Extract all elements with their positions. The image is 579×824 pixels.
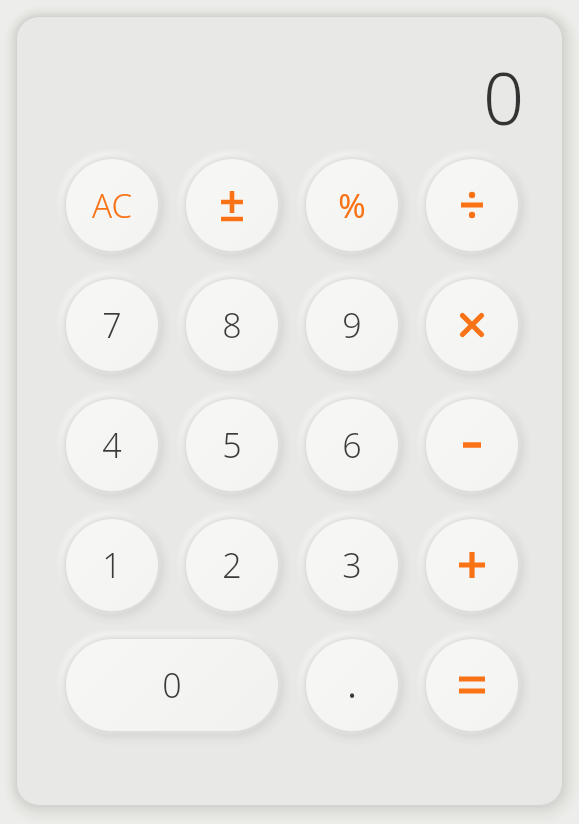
staticText: 0: [162, 662, 182, 708]
staticText: 0: [482, 48, 524, 146]
button[interactable]: Plus: [426, 519, 518, 611]
staticText: 7: [102, 302, 122, 348]
staticText: 2: [222, 542, 242, 588]
staticText: %: [338, 183, 366, 228]
button[interactable]: 3: [306, 519, 398, 611]
button[interactable]: 1: [66, 519, 158, 611]
staticText: 6: [342, 422, 362, 468]
button[interactable]: 5: [186, 399, 278, 491]
staticText: 4: [102, 422, 122, 468]
button[interactable]: Divide: [426, 159, 518, 251]
button[interactable]: 6: [306, 399, 398, 491]
button[interactable]: Equals: [426, 639, 518, 731]
button[interactable]: .: [306, 639, 398, 731]
button[interactable]: 9: [306, 279, 398, 371]
staticText: 8: [222, 302, 242, 348]
button[interactable]: 4: [66, 399, 158, 491]
button[interactable]: Multiply: [426, 279, 518, 371]
staticText: .: [347, 662, 357, 708]
button[interactable]: 0: [66, 639, 278, 731]
staticText: 9: [342, 302, 362, 348]
staticText: 1: [102, 542, 122, 588]
button[interactable]: 8: [186, 279, 278, 371]
button[interactable]: 7: [66, 279, 158, 371]
staticText: AC: [92, 183, 132, 228]
button[interactable]: 2: [186, 519, 278, 611]
staticText: 3: [342, 542, 362, 588]
staticText: 5: [222, 422, 242, 468]
button[interactable]: %: [306, 159, 398, 251]
button[interactable]: Plus minus: [186, 159, 278, 251]
button[interactable]: Minus: [426, 399, 518, 491]
button[interactable]: AC: [66, 159, 158, 251]
